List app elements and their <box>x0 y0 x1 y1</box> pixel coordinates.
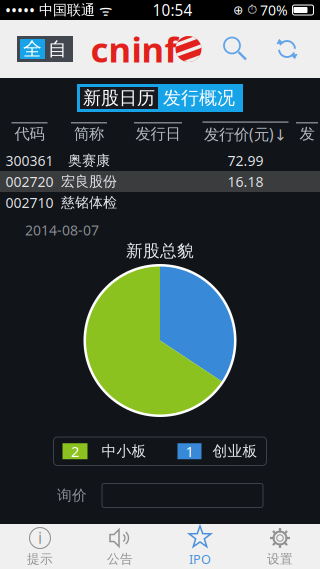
button[interactable]: 002720 <box>0 171 320 192</box>
staticText: 创业板 <box>212 442 257 460</box>
staticText: 中小板 <box>101 442 146 460</box>
staticText: 慈铭体检 <box>61 194 117 211</box>
button[interactable]: Refresh <box>276 38 298 60</box>
button[interactable]: 新股日历 <box>80 87 158 109</box>
staticText: 发行日 <box>135 124 180 144</box>
staticText: 自 <box>48 37 67 61</box>
button[interactable]: IPO <box>160 524 240 569</box>
staticText: i <box>38 527 42 548</box>
button[interactable]: Search <box>224 37 247 60</box>
staticText: 宏良股份 <box>61 173 117 190</box>
staticText: 新股日历 <box>83 87 155 109</box>
staticText: 提示 <box>27 551 53 567</box>
button[interactable]: 公告 <box>80 524 160 569</box>
staticText: 发 <box>299 124 314 144</box>
staticText: 中国联通 <box>35 1 95 19</box>
staticText: 全 <box>23 37 42 61</box>
staticText: 简称 <box>74 124 104 144</box>
button[interactable]: 002710 <box>0 192 320 213</box>
button[interactable]: i <box>0 524 80 569</box>
button[interactable]: 设置 <box>240 524 320 569</box>
button[interactable]: 发行概况 <box>158 87 240 109</box>
staticText: ⏱ <box>244 4 260 16</box>
staticText: 2 <box>71 441 79 461</box>
staticText: 2014-08-07 <box>25 220 99 240</box>
staticText: 1 <box>185 441 193 461</box>
staticText: 002720 <box>5 172 53 191</box>
staticText: cninf <box>90 25 177 73</box>
staticText: 70% <box>260 0 288 20</box>
staticText: 询价 <box>57 486 87 505</box>
staticText: 公告 <box>107 551 133 567</box>
staticText: 新股总貌 <box>126 240 194 261</box>
staticText: 72.99 <box>227 151 263 170</box>
button[interactable]: 300361 <box>0 150 320 171</box>
staticText: 发行概况 <box>163 87 235 109</box>
staticText: IPO <box>189 550 211 568</box>
staticText: ••••• <box>5 0 35 21</box>
staticText: ⊕ <box>233 3 244 17</box>
staticText: 发行价(元)↓ <box>204 124 287 144</box>
button[interactable]: 全 <box>17 36 73 62</box>
staticText: 300361 <box>5 151 53 170</box>
staticText: 002710 <box>5 193 53 212</box>
staticText: ᯤ <box>95 0 112 20</box>
staticText: 10:54 <box>152 0 192 20</box>
staticText: 奥赛康 <box>68 152 110 169</box>
staticText: 代码 <box>14 124 44 144</box>
staticText: 设置 <box>267 551 293 567</box>
staticText: 16.18 <box>227 172 263 191</box>
